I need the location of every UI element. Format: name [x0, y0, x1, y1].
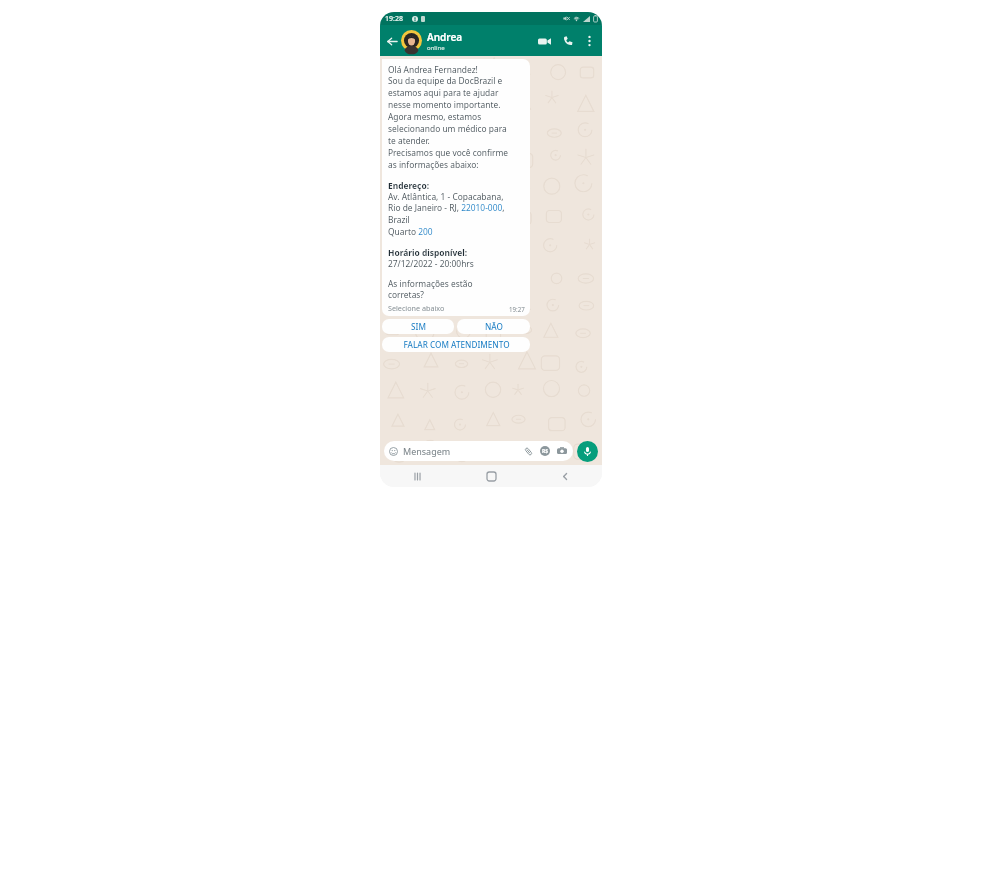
staticText: NÃO	[485, 321, 503, 332]
staticText: 27/12/2022 - 20:00hrs	[388, 258, 474, 269]
staticText: SIM	[411, 321, 426, 332]
staticText: Andrea	[427, 30, 463, 44]
button[interactable]: Attach	[522, 445, 534, 457]
button[interactable]: FALAR COM ATENDIMENTO	[382, 337, 530, 352]
staticText: R$	[542, 448, 549, 455]
staticText: Endereço:	[388, 180, 429, 191]
staticText: 19:27	[509, 305, 525, 313]
staticText: Av. Atlântica, 1 - Copacabana, Rio de Ja…	[388, 191, 505, 238]
staticText: FALAR COM ATENDIMENTO	[403, 339, 510, 350]
button[interactable]: Call	[558, 31, 578, 51]
button[interactable]: Recents	[380, 465, 454, 487]
button[interactable]: More options	[580, 32, 598, 50]
button[interactable]: Mensagem	[384, 441, 573, 461]
staticText: As informações estão corretas?	[388, 278, 473, 301]
button[interactable]: Home	[454, 465, 528, 487]
button[interactable]: Payments	[539, 445, 551, 457]
button[interactable]: Back	[528, 465, 602, 487]
button[interactable]: Back	[384, 33, 400, 49]
button[interactable]: NÃO	[457, 319, 530, 334]
staticText: 19:28	[385, 14, 403, 24]
staticText: Selecione abaixo	[388, 303, 445, 313]
button[interactable]: Voice message	[577, 441, 598, 462]
staticText: Olá Andrea Fernandez! Sou da equipe da D…	[388, 64, 509, 171]
button[interactable]: Olá Andrea Fernandez! Sou da equipe da D…	[382, 59, 530, 316]
staticText: Mensagem	[403, 445, 451, 457]
button[interactable]: SIM	[382, 319, 454, 334]
staticText: Horário disponível:	[388, 247, 468, 258]
staticText: online	[427, 44, 445, 52]
button[interactable]: Video call	[534, 31, 554, 51]
button[interactable]: Andrea	[427, 30, 534, 52]
button[interactable]: Camera	[556, 445, 568, 457]
